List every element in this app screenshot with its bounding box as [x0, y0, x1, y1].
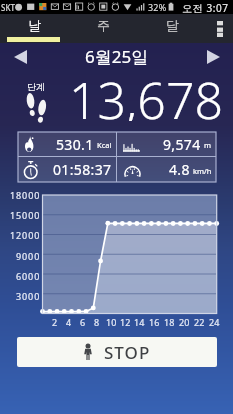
staticText: 9,574 — [163, 135, 201, 154]
staticText: 3000 — [16, 290, 41, 302]
staticText: 10 — [106, 316, 117, 328]
button[interactable]: 4.8 — [117, 157, 216, 182]
staticText: 15000 — [10, 209, 41, 221]
staticText: 16 — [149, 316, 160, 328]
button[interactable]: 날 — [0, 14, 69, 43]
button[interactable]: 01:58:37 — [18, 157, 116, 182]
staticText: 18000 — [10, 189, 41, 201]
staticText: 12 — [120, 316, 131, 328]
staticText: Kcal — [97, 140, 112, 150]
staticText: 530.1 — [56, 135, 94, 154]
staticText: 단계 — [27, 81, 45, 92]
staticText: 날 — [28, 17, 41, 33]
staticText: 8 — [94, 316, 100, 328]
staticText: km/h — [193, 166, 212, 176]
staticText: 6 — [80, 316, 86, 328]
staticText: 01:58:37 — [53, 160, 112, 179]
staticText: 12000 — [10, 229, 41, 241]
button[interactable]: Previous day — [12, 48, 28, 66]
staticText: SKT — [1, 2, 15, 13]
staticText: 오전 3:07 — [182, 1, 229, 15]
button[interactable]: Next day — [205, 48, 221, 66]
staticText: m — [204, 140, 212, 150]
staticText: 4 — [66, 316, 72, 328]
button[interactable]: STOP — [17, 337, 217, 367]
staticText: 18 — [164, 316, 175, 328]
staticText: 24 — [209, 316, 220, 328]
button[interactable]: 530.1 — [18, 132, 116, 156]
staticText: STOP — [104, 341, 151, 364]
staticText: 13,678 — [69, 66, 223, 121]
button[interactable]: 9,574 — [117, 132, 216, 156]
staticText: 6월25일 — [85, 45, 149, 68]
button[interactable]: 달 — [138, 14, 207, 43]
staticText: 6000 — [16, 270, 41, 282]
staticText: 2 — [52, 316, 58, 328]
staticText: 14 — [134, 316, 145, 328]
staticText: 주 — [97, 17, 110, 33]
staticText: 9000 — [16, 250, 41, 262]
staticText: 달 — [166, 17, 179, 33]
staticText: 22 — [194, 316, 205, 328]
staticText: 20 — [179, 316, 190, 328]
button[interactable]: 주 — [69, 14, 138, 43]
staticText: 4.8 — [169, 160, 190, 179]
staticText: 32% — [148, 1, 167, 13]
button[interactable]: More options — [207, 14, 233, 43]
